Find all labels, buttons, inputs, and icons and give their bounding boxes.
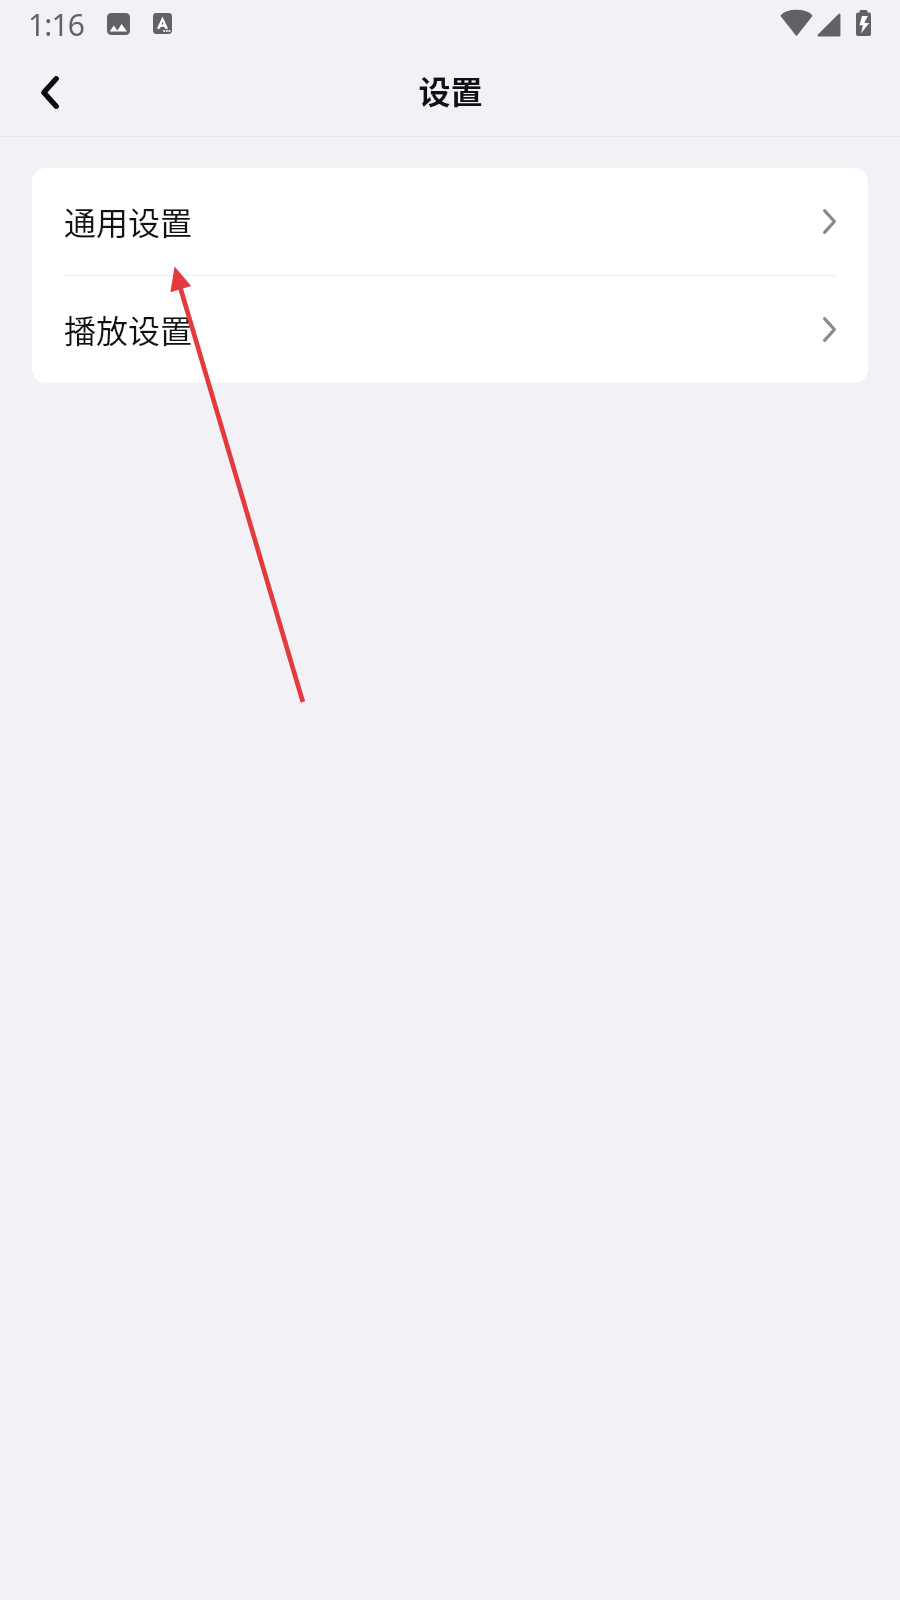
- staticText: 1:16: [28, 4, 84, 45]
- staticText: 设置: [418, 67, 483, 113]
- button[interactable]: 通用设置: [32, 168, 868, 275]
- button[interactable]: 播放设置: [32, 276, 868, 383]
- staticText: 播放设置: [64, 306, 193, 352]
- button[interactable]: Back: [16, 58, 84, 126]
- staticText: 通用设置: [64, 198, 193, 244]
